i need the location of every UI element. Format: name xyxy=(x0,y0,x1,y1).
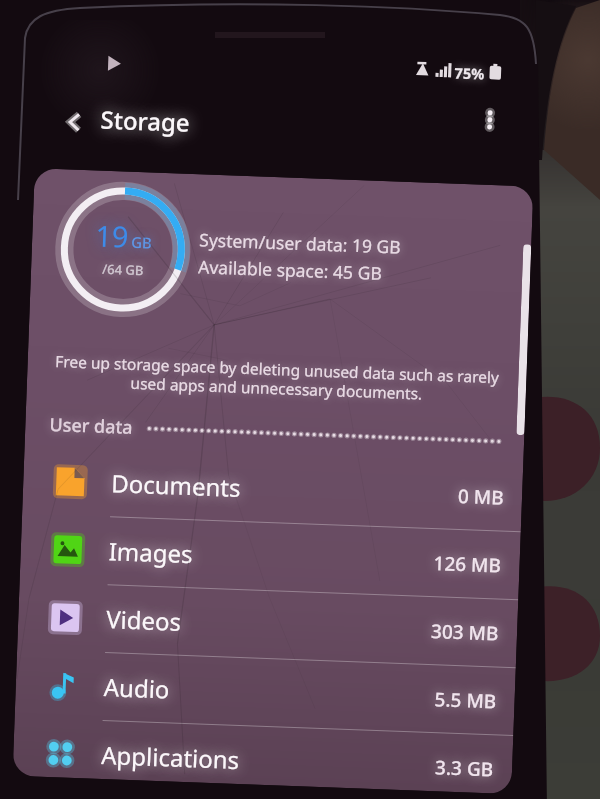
button[interactable]: Back xyxy=(55,102,94,141)
staticText: Available space: 45 GB xyxy=(198,254,383,285)
staticText: 19 xyxy=(95,215,130,256)
button[interactable]: Applications xyxy=(12,718,513,794)
staticText: /64 GB xyxy=(102,260,144,279)
button[interactable]: Videos xyxy=(17,582,518,667)
button[interactable]: Audio xyxy=(15,650,516,735)
staticText: Applications xyxy=(101,738,240,776)
staticText: Free up storage space by deleting unused… xyxy=(43,350,511,407)
button[interactable]: More options xyxy=(470,100,510,140)
button[interactable]: Images xyxy=(20,514,521,599)
button[interactable]: Documents xyxy=(22,446,523,531)
staticText: 303 MB xyxy=(431,618,499,646)
staticText: 75% xyxy=(454,62,485,84)
staticText: GB xyxy=(131,232,152,253)
staticText: Documents xyxy=(111,466,242,504)
staticText: 0 MB xyxy=(458,483,504,511)
staticText: 126 MB xyxy=(433,550,502,579)
staticText: 3.3 GB xyxy=(435,754,494,782)
staticText: 5.5 MB xyxy=(434,686,497,714)
staticText: Audio xyxy=(103,670,170,705)
staticText: Storage xyxy=(100,103,191,139)
staticText: User data xyxy=(49,412,134,440)
staticText: Videos xyxy=(106,602,182,638)
staticText: System/user data: 19 GB xyxy=(199,227,401,259)
staticText: Images xyxy=(108,534,193,570)
